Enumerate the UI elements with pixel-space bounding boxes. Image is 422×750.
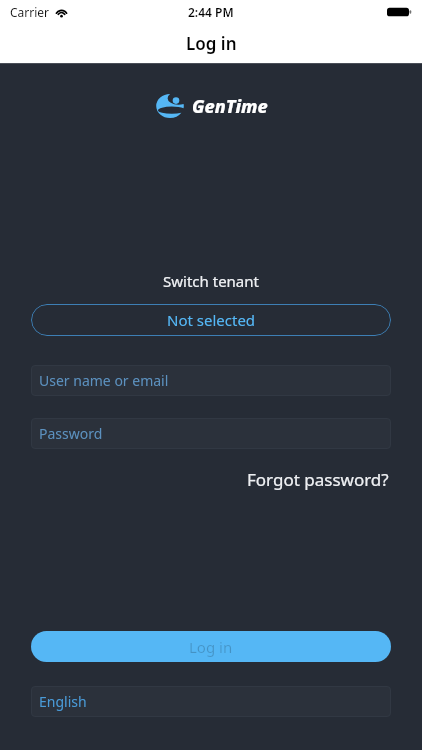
button[interactable]: Not selected (31, 304, 391, 336)
staticText: GenTime (192, 94, 268, 119)
button[interactable]: User name or email (31, 365, 391, 396)
staticText: User name or email (39, 371, 169, 390)
staticText: Log in (186, 32, 237, 55)
staticText: Password (39, 424, 103, 443)
staticText: Carrier (10, 4, 50, 20)
button[interactable]: Forgot password? (245, 464, 391, 495)
button[interactable]: Password (31, 418, 391, 449)
staticText: 2:44 PM (188, 4, 234, 20)
button[interactable]: English (31, 686, 391, 717)
staticText: Log in (189, 637, 233, 657)
staticText: Forgot password? (247, 468, 389, 491)
staticText: Not selected (167, 310, 256, 330)
staticText: English (39, 692, 87, 711)
button[interactable]: Log in (31, 631, 391, 662)
staticText: Switch tenant (0, 271, 422, 291)
